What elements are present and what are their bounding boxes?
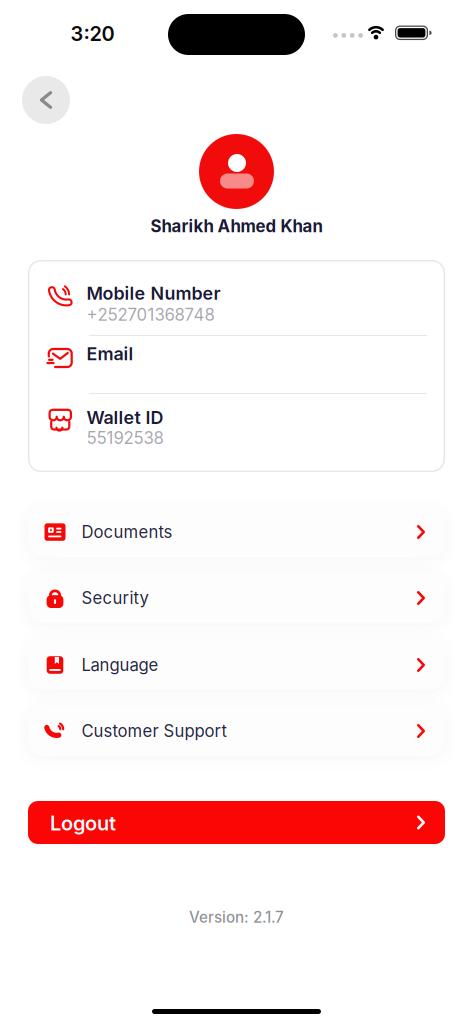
staticText: Customer Support — [81, 721, 226, 741]
button[interactable]: Documents — [28, 507, 445, 557]
staticText: Security — [81, 588, 148, 608]
staticText: 55192538 — [86, 428, 163, 448]
staticText: +252701368748 — [86, 304, 214, 325]
staticText: Email — [86, 343, 133, 365]
button[interactable]: Customer Support — [28, 706, 445, 756]
staticText: Wallet ID — [86, 407, 163, 428]
staticText: 3:20 — [70, 21, 114, 46]
button[interactable]: Security — [28, 573, 445, 623]
button[interactable]: Logout — [28, 801, 445, 844]
staticText: Version: 2.1.7 — [189, 908, 284, 926]
button[interactable]: Language — [28, 640, 445, 690]
staticText: Language — [81, 655, 158, 675]
staticText: Mobile Number — [86, 282, 220, 304]
button[interactable]: Back — [22, 76, 70, 124]
staticText: Documents — [81, 522, 172, 542]
staticText: Sharikh Ahmed Khan — [150, 216, 322, 236]
staticText: Logout — [50, 811, 116, 835]
